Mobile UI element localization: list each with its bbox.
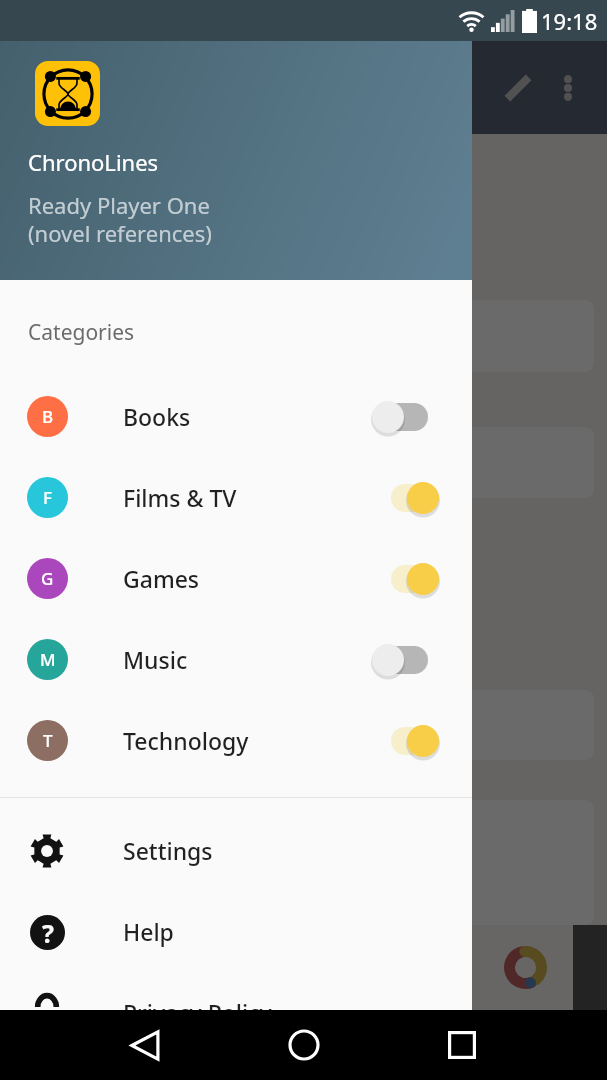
staticText: F (43, 486, 52, 509)
staticText: Categories (28, 318, 135, 347)
staticText: Technology (123, 725, 249, 756)
button[interactable] (13, 690, 594, 760)
button[interactable]: Edit (493, 63, 543, 113)
staticText: Settings (123, 835, 213, 866)
button[interactable]: Back (119, 1019, 171, 1071)
staticText: Books (123, 401, 191, 432)
staticText: M (40, 648, 56, 671)
button[interactable]: App icon (35, 61, 100, 126)
button[interactable] (13, 427, 594, 498)
button[interactable]: F (0, 457, 472, 538)
button[interactable]: B (0, 376, 472, 457)
button[interactable]: Settings (0, 810, 472, 891)
staticText: G (41, 567, 54, 590)
staticText: ? (42, 916, 54, 950)
staticText: Games (123, 563, 200, 594)
button[interactable]: Home (278, 1019, 330, 1071)
button[interactable] (13, 300, 594, 372)
button[interactable]: Recents (436, 1019, 488, 1071)
button[interactable]: M (0, 619, 472, 700)
button[interactable]: ? (0, 891, 472, 972)
staticText: T (43, 729, 53, 752)
staticText: Ready Player One (novel references) (28, 190, 212, 248)
button[interactable]: Privacy Policy (0, 972, 472, 1053)
staticText: Films & TV (123, 482, 237, 513)
staticText: ChronoLines (28, 147, 159, 177)
button[interactable]: G (0, 538, 472, 619)
button[interactable]: Timer (503, 945, 548, 990)
button[interactable]: More options (543, 63, 593, 113)
button[interactable]: T (0, 700, 472, 781)
staticText: Privacy Policy (123, 997, 272, 1028)
button[interactable] (13, 800, 594, 925)
staticText: 19:18 (541, 6, 598, 36)
staticText: B (42, 405, 54, 428)
staticText: Music (123, 644, 188, 675)
staticText: Help (123, 916, 174, 947)
